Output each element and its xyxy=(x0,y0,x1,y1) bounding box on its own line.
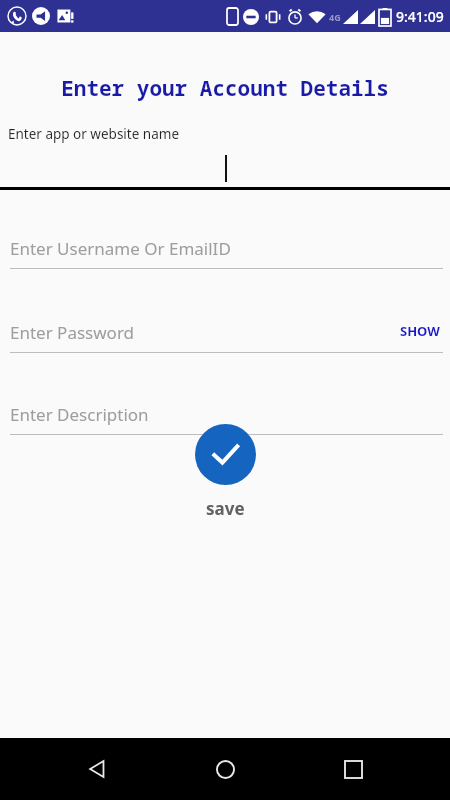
staticText: save xyxy=(206,497,245,520)
staticText: Enter Username Or EmailID xyxy=(10,237,231,260)
button[interactable]: Save xyxy=(195,424,256,485)
button[interactable]: Enter Username Or EmailID xyxy=(0,231,450,269)
button[interactable]: Back xyxy=(73,745,121,793)
staticText: Enter Description xyxy=(10,403,149,426)
button[interactable]: Enter Password xyxy=(0,315,450,353)
button[interactable]: Enter Description xyxy=(0,397,450,435)
staticText: 9:41:09 xyxy=(396,7,444,26)
button[interactable]: SHOW xyxy=(400,322,440,340)
button[interactable]: Home xyxy=(201,745,249,793)
staticText: 4G xyxy=(329,11,341,23)
button[interactable]: Recent apps xyxy=(329,745,377,793)
button[interactable] xyxy=(0,150,450,190)
staticText: SHOW xyxy=(400,322,440,340)
staticText: Enter Password xyxy=(10,321,135,344)
staticText: Enter app or website name xyxy=(8,125,179,143)
staticText: Enter your Account Details xyxy=(61,74,389,103)
